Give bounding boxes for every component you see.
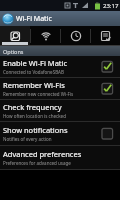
button[interactable] (0, 26, 30, 46)
staticText: Remember Wi-Fis (3, 80, 65, 90)
button[interactable]: Show notifications (0, 122, 120, 145)
button[interactable]: Advanced preferences (0, 146, 120, 169)
staticText: Show notifications (3, 125, 68, 135)
staticText: Options (3, 48, 24, 55)
button[interactable]: Check frequency (0, 100, 120, 121)
staticText: Advanced preferences (3, 149, 82, 159)
button[interactable] (31, 26, 60, 46)
button[interactable]: Remember Wi-Fis (0, 78, 120, 99)
button[interactable] (91, 26, 120, 46)
staticText: Enable Wi-Fi Matic (3, 58, 68, 68)
staticText: Remember new connected Wi-Fis (3, 91, 74, 97)
staticText: How often location is checked (3, 113, 66, 119)
button[interactable] (61, 26, 90, 46)
staticText: Check frequency (3, 102, 62, 112)
staticText: 23:17 (103, 2, 119, 10)
staticText: Notifies of every action (3, 136, 52, 142)
staticText: Wi-Fi Matic (16, 14, 52, 24)
staticText: Preferences for advanced usage (3, 160, 71, 166)
button[interactable]: Enable Wi-Fi Matic (0, 56, 120, 77)
staticText: Connected to VodafoneSBAB (3, 69, 64, 75)
